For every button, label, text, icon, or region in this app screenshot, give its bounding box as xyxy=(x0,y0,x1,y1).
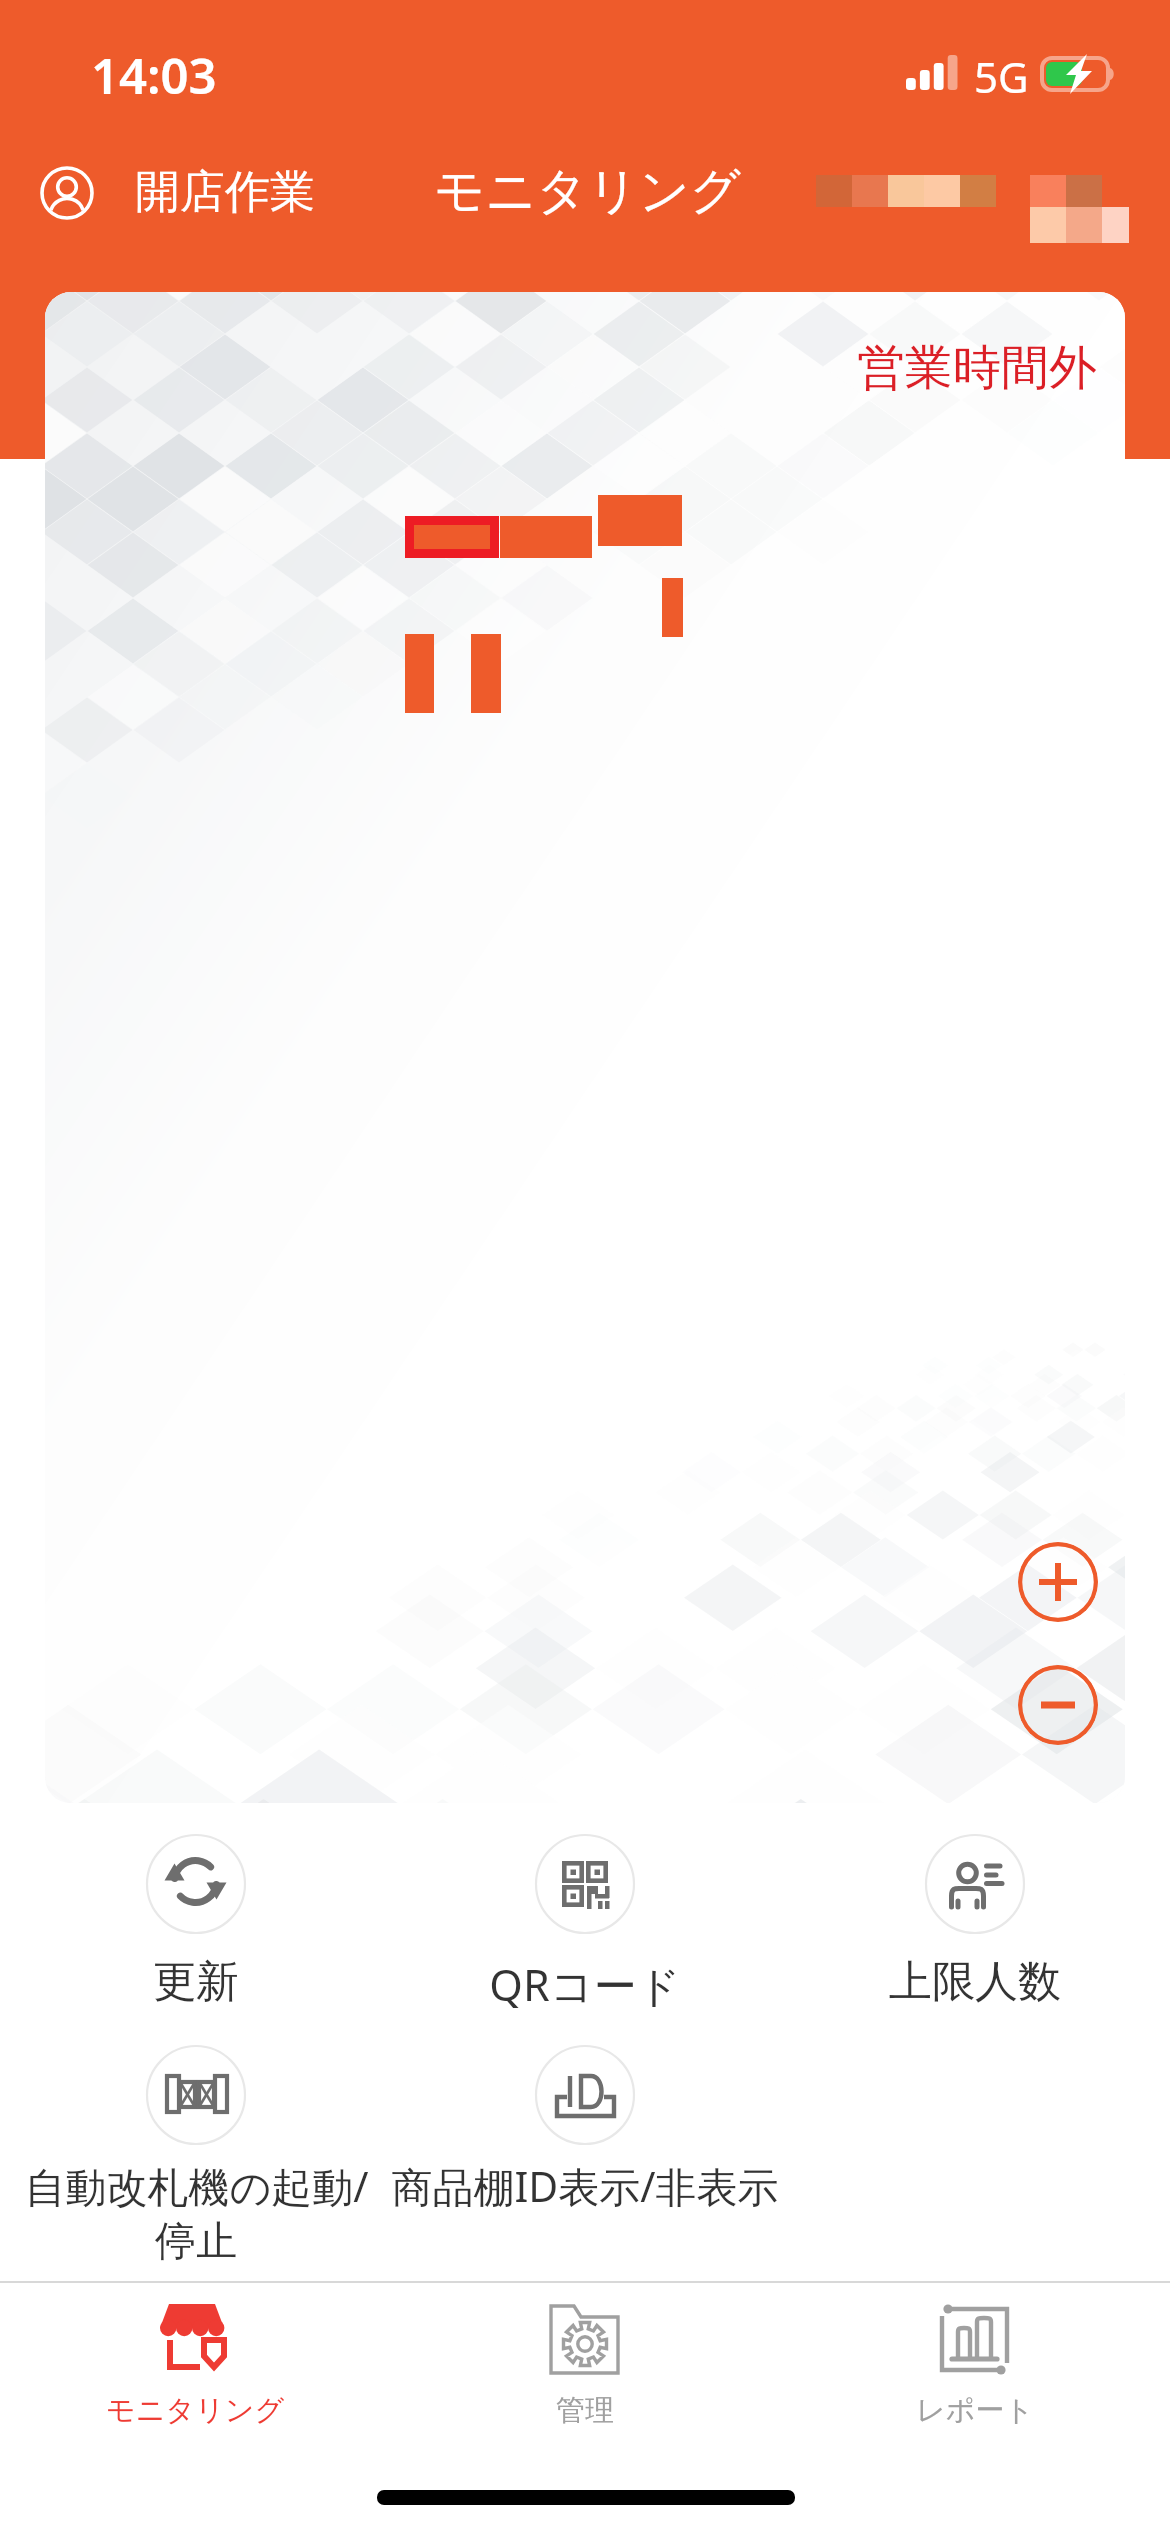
button[interactable]: QRコード xyxy=(420,1834,750,2014)
button[interactable]: Zoom out xyxy=(1018,1665,1098,1745)
staticText: モニタリング xyxy=(434,160,742,223)
staticText: 14:03 xyxy=(91,42,217,109)
button[interactable]: 商品棚ID表示/非表示 xyxy=(370,2045,800,2214)
button[interactable]: レポート xyxy=(825,2299,1125,2429)
button[interactable]: 管理 xyxy=(435,2299,735,2429)
staticText: レポート xyxy=(916,2392,1035,2429)
staticText: 5G xyxy=(974,48,1029,105)
staticText: 上限人数 xyxy=(889,1955,1061,2009)
staticText: 管理 xyxy=(556,2392,614,2429)
staticText: モニタリング xyxy=(106,2392,285,2429)
staticText: QRコード xyxy=(489,1955,681,2014)
button[interactable]: 開店作業 xyxy=(40,164,315,221)
staticText: 営業時間外 xyxy=(857,338,1097,398)
button[interactable]: Zoom in xyxy=(1018,1542,1098,1622)
staticText: 自動改札機の起動/ xyxy=(24,2158,369,2214)
staticText: 更新 xyxy=(153,1955,239,2009)
button[interactable]: 更新 xyxy=(31,1834,361,2009)
button[interactable]: モニタリング xyxy=(45,2299,345,2429)
staticText: 開店作業 xyxy=(135,164,315,221)
button[interactable]: 自動改札機の起動/ xyxy=(0,2045,396,2268)
staticText: 商品棚ID表示/非表示 xyxy=(391,2158,779,2214)
staticText: 停止 xyxy=(155,2216,237,2268)
button[interactable]: 上限人数 xyxy=(810,1834,1140,2009)
